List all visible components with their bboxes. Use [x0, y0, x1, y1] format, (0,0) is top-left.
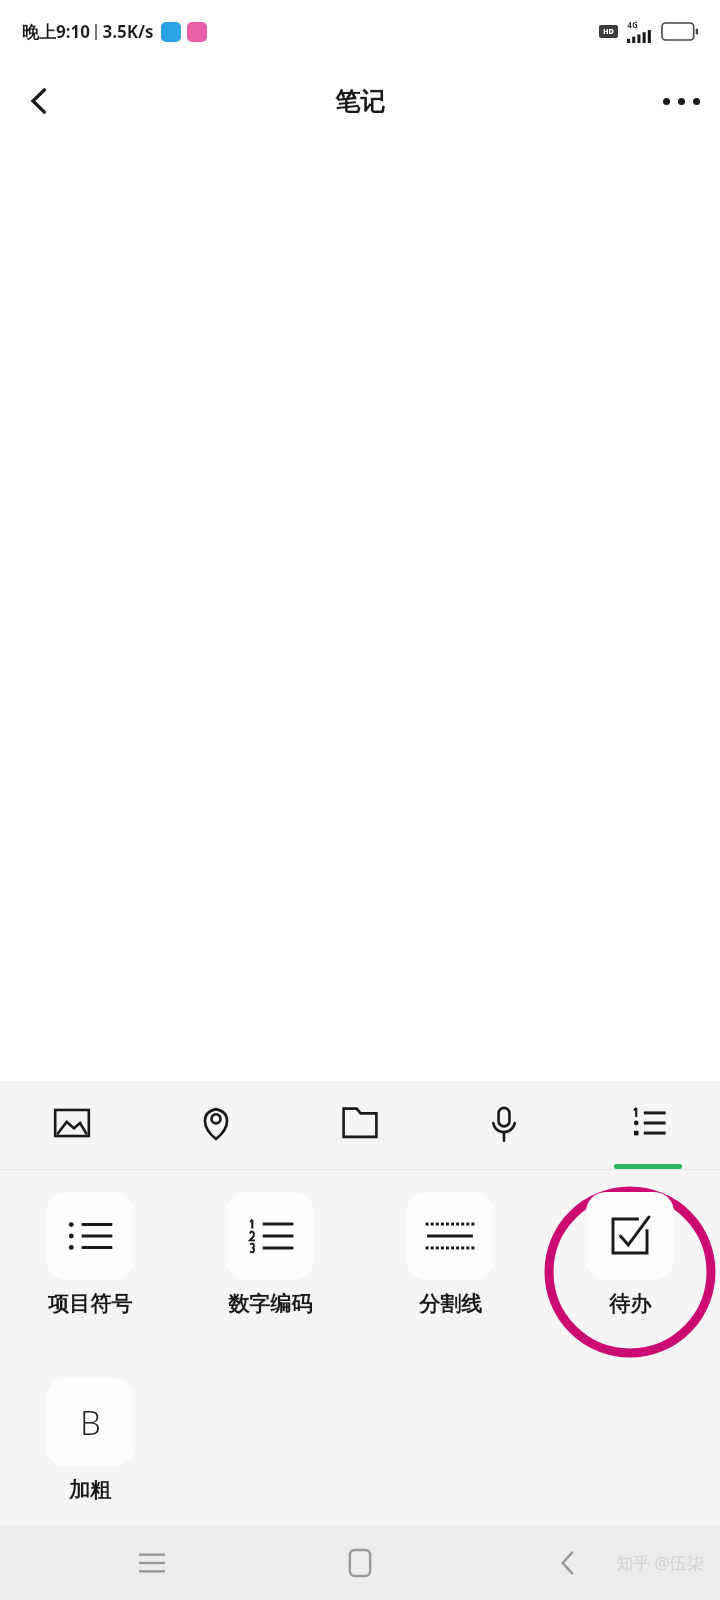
button[interactable]: Back: [536, 1531, 600, 1595]
button[interactable]: 数字编码: [226, 1192, 314, 1280]
staticText: 待办: [609, 1291, 651, 1317]
staticText: B: [80, 1400, 101, 1445]
button[interactable]: Recents: [120, 1531, 184, 1595]
staticText: 加粗: [69, 1477, 111, 1503]
button[interactable]: 分割线: [406, 1192, 494, 1280]
button[interactable]: Home: [328, 1531, 392, 1595]
button[interactable]: Voice input: [432, 1083, 576, 1169]
staticText: 笔记: [335, 86, 385, 117]
button[interactable]: More options: [642, 62, 720, 140]
button[interactable]: 项目符号: [46, 1192, 134, 1280]
button[interactable]: 加粗: [46, 1378, 134, 1466]
staticText: 知乎 @伍柒: [616, 1551, 704, 1574]
button[interactable]: Back: [0, 62, 78, 140]
staticText: 4G: [627, 19, 638, 30]
button[interactable]: Lists: [576, 1083, 720, 1169]
staticText: 项目符号: [48, 1291, 132, 1317]
staticText: 数字编码: [228, 1291, 312, 1317]
button[interactable]: 待办: [586, 1192, 674, 1280]
button[interactable]: Insert file: [288, 1083, 432, 1169]
staticText: 3.5K/s: [102, 20, 154, 43]
staticText: 分割线: [419, 1291, 482, 1317]
button[interactable]: Insert location: [144, 1083, 288, 1169]
staticText: HD: [603, 27, 614, 37]
staticText: 晚上9:10: [22, 20, 90, 43]
button[interactable]: Insert image: [0, 1083, 144, 1169]
